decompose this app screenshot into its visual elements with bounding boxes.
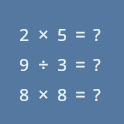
staticText: 8 [57,83,67,106]
button[interactable]: 2 [0,19,124,49]
button[interactable]: 8 [0,79,124,109]
staticText: = [75,52,86,77]
staticText: 8 [19,83,29,106]
staticText: = [75,22,86,47]
staticText: = [75,82,86,107]
staticText: ? [93,23,101,46]
button[interactable]: 9 [0,49,124,79]
staticText: ? [93,83,101,106]
staticText: ÷ [38,52,49,77]
staticText: 5 [57,23,67,46]
staticText: 9 [19,53,29,76]
staticText: × [38,22,49,47]
staticText: 2 [19,23,29,46]
staticText: ? [93,53,101,76]
staticText: × [38,82,49,107]
staticText: 3 [57,53,67,76]
